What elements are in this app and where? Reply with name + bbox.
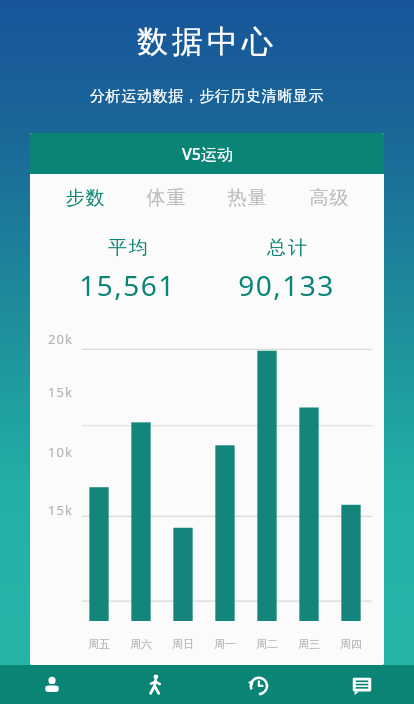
staticText: 周日 (172, 637, 194, 651)
button[interactable]: 步数 (44, 174, 125, 222)
staticText: 周四 (340, 637, 362, 651)
staticText: 90,133 (238, 266, 335, 304)
button[interactable]: 热量 (206, 174, 288, 222)
staticText: 体重 (146, 186, 186, 210)
staticText: 平均 (107, 236, 149, 260)
staticText: 总计 (266, 236, 308, 260)
staticText: 15k (48, 383, 73, 401)
button[interactable]: 高级 (288, 174, 370, 222)
staticText: 分析运动数据，步行历史清晰显示 (0, 87, 414, 106)
staticText: 热量 (227, 186, 267, 210)
button[interactable]: Profile (0, 665, 103, 704)
staticText: 周五 (88, 637, 110, 651)
staticText: 周三 (298, 637, 320, 651)
button[interactable]: 平均 (48, 236, 207, 304)
staticText: 15,561 (79, 266, 176, 304)
button[interactable]: V5运动 (30, 133, 384, 174)
staticText: 周六 (130, 637, 152, 651)
button[interactable]: Messages (310, 665, 414, 704)
button[interactable]: History (206, 665, 310, 704)
staticText: 10k (48, 443, 73, 461)
button[interactable]: 总计 (207, 236, 366, 304)
staticText: 20k (48, 330, 73, 348)
staticText: 周一 (214, 637, 236, 651)
staticText: 步数 (65, 186, 105, 210)
button[interactable]: Activity (103, 665, 206, 704)
staticText: 周二 (256, 637, 278, 651)
staticText: V5运动 (182, 143, 233, 165)
button[interactable]: 体重 (125, 174, 206, 222)
staticText: 高级 (309, 186, 349, 210)
staticText: 数据中心 (0, 22, 414, 61)
staticText: 15k (48, 501, 73, 519)
